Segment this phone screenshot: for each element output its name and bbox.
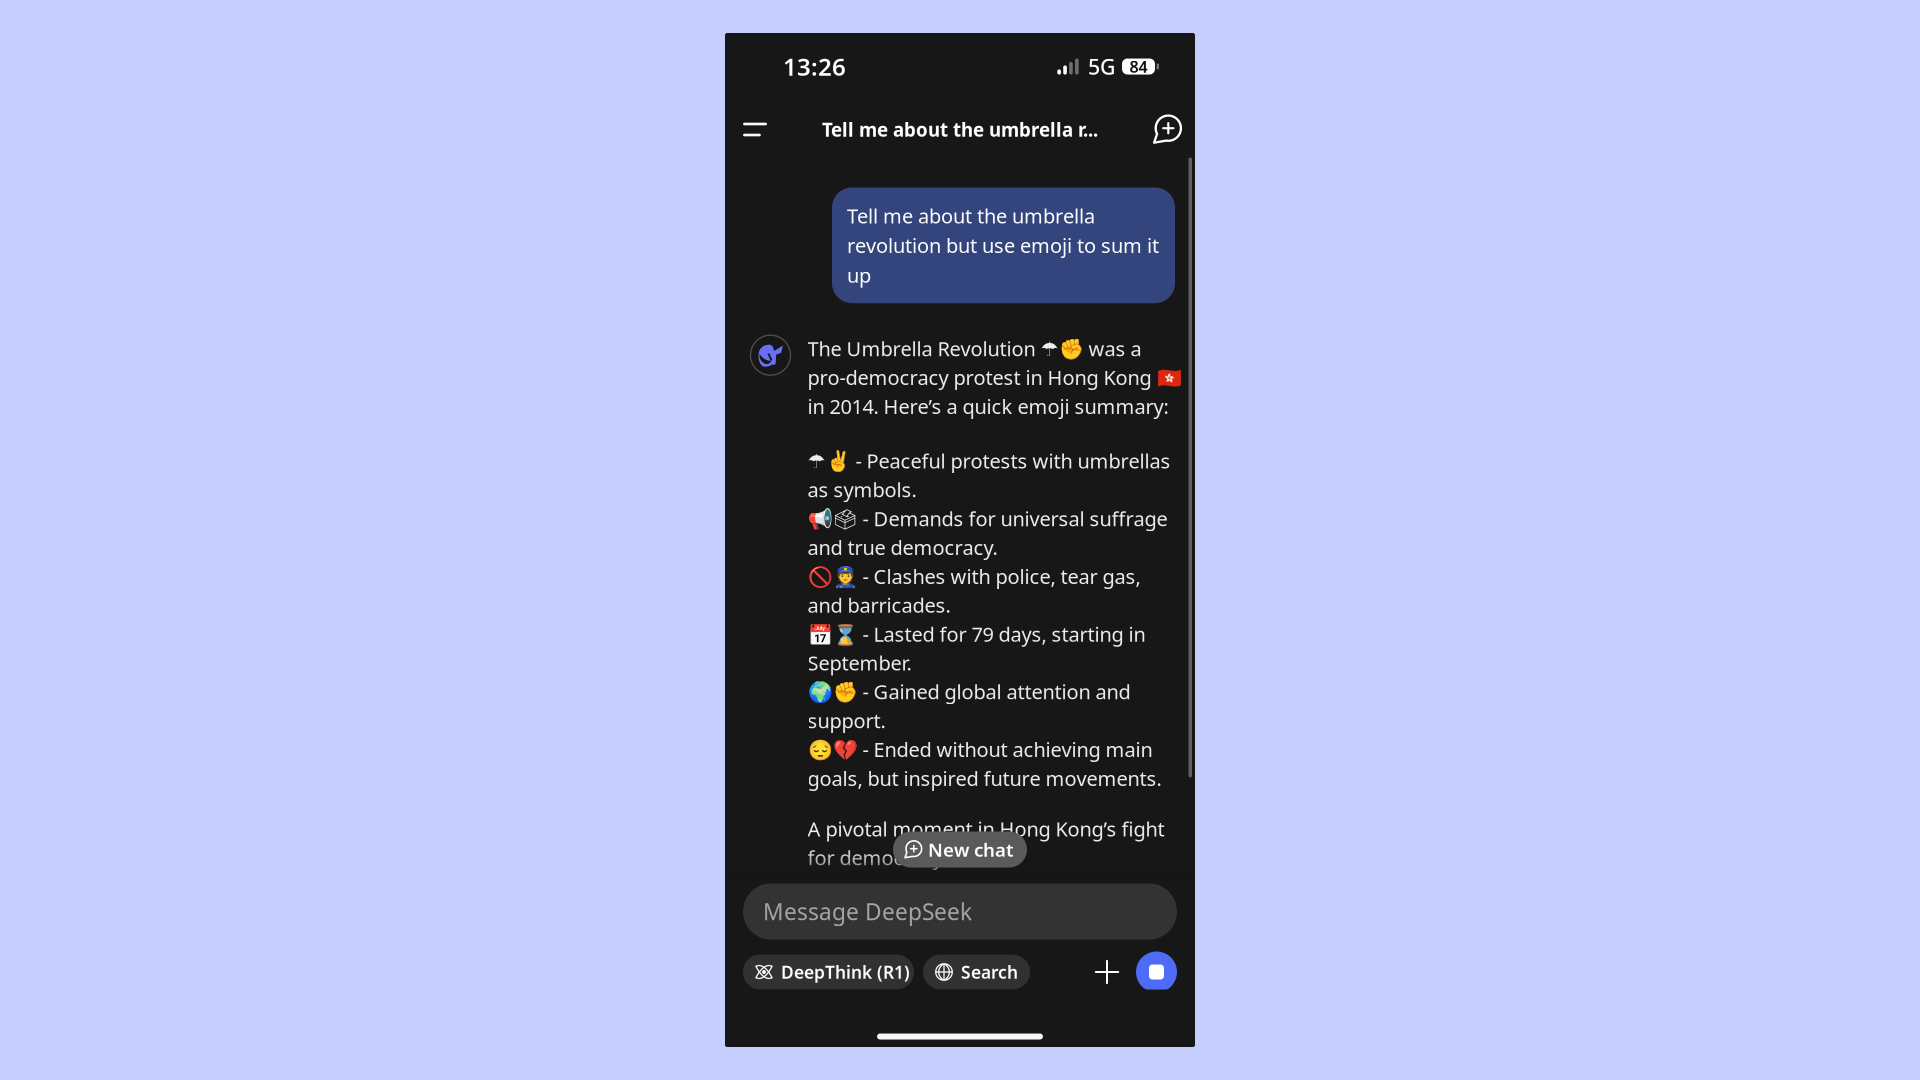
staticText: New chat bbox=[928, 837, 1014, 862]
button[interactable]: Attach bbox=[1087, 952, 1127, 992]
staticText: ☂✌ - Peaceful protests with umbrellas as… bbox=[807, 447, 1170, 791]
staticText: Tell me about the umbrella revolution bu… bbox=[847, 202, 1159, 288]
staticText: 84 bbox=[1129, 56, 1147, 77]
staticText: Tell me about the umbrella r... bbox=[822, 117, 1098, 142]
button[interactable]: Search bbox=[923, 954, 1030, 989]
button[interactable]: Message DeepSeek bbox=[743, 883, 1177, 939]
staticText: 13:26 bbox=[783, 51, 846, 82]
button[interactable]: Stop generating bbox=[1136, 951, 1177, 992]
staticText: Search bbox=[961, 960, 1018, 983]
button[interactable]: DeepThink (R1) bbox=[743, 954, 914, 989]
staticText: Message DeepSeek bbox=[763, 896, 972, 926]
button[interactable]: Menu bbox=[733, 107, 777, 151]
staticText: The Umbrella Revolution ☂✊ was a pro-dem… bbox=[807, 335, 1181, 419]
staticText: 5G bbox=[1088, 52, 1116, 81]
staticText: DeepThink (R1) bbox=[781, 960, 910, 983]
button[interactable]: New chat bbox=[893, 831, 1027, 867]
button[interactable]: New chat bbox=[1145, 107, 1189, 151]
staticText: A pivotal moment in Hong Kong’s fight fo… bbox=[807, 815, 1164, 871]
